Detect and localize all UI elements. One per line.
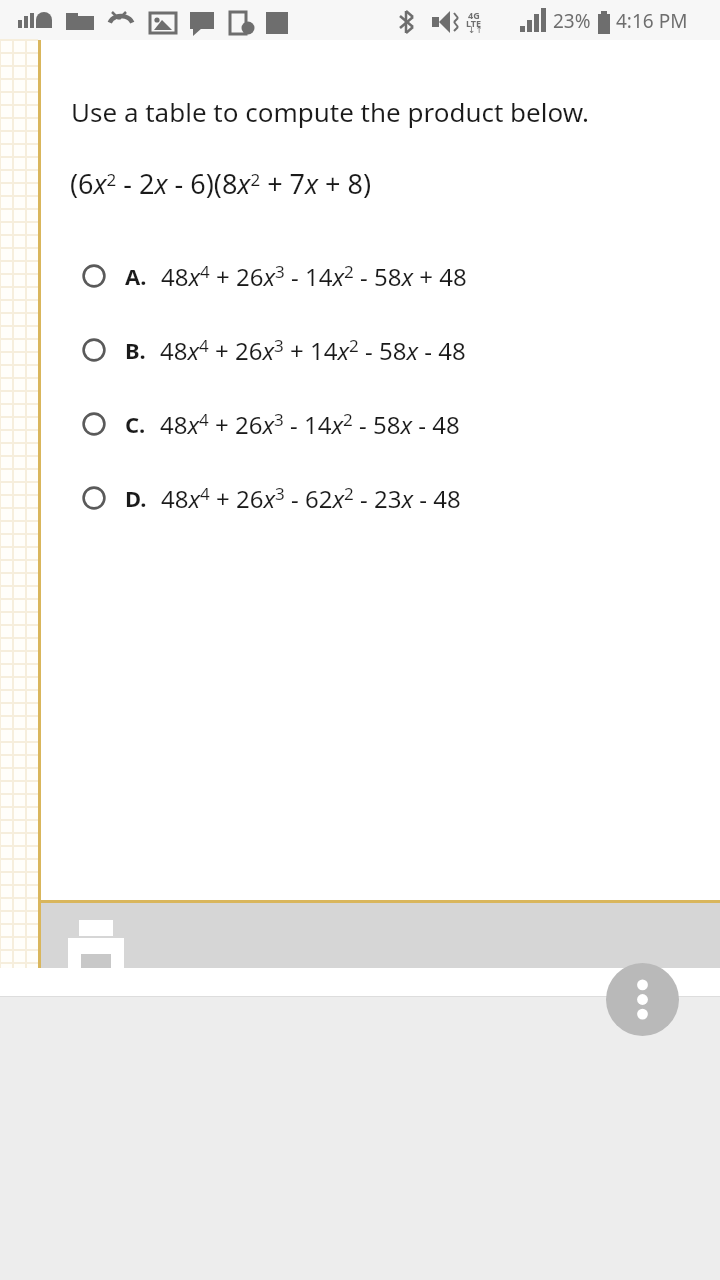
staticText: C. (125, 409, 146, 439)
staticText: 48x4 + 26x3 - 14x2 - 58x - 48 (160, 408, 460, 441)
button[interactable]: C. (41, 387, 720, 461)
staticText: ↓↑ (468, 25, 484, 35)
staticText: 48x4 + 26x3 - 62x2 - 23x - 48 (161, 482, 461, 515)
button[interactable]: Print (64, 912, 122, 970)
staticText: LTE (466, 17, 482, 29)
staticText: 4:16 PM (616, 8, 688, 34)
button[interactable]: More options (606, 963, 679, 1036)
staticText: (6x2 - 2x - 6)(8x2 + 7x + 8) (70, 165, 372, 202)
button[interactable]: A. (41, 239, 720, 313)
staticText: 4G (468, 9, 480, 21)
staticText: A. (125, 261, 147, 291)
staticText: 48x4 + 26x3 + 14x2 - 58x - 48 (160, 334, 466, 367)
button[interactable]: B. (41, 313, 720, 387)
staticText: B. (125, 335, 146, 365)
staticText: 48x4 + 26x3 - 14x2 - 58x + 48 (161, 260, 467, 293)
button[interactable]: D. (41, 461, 720, 535)
staticText: D. (125, 483, 147, 513)
staticText: Use a table to compute the product below… (71, 94, 590, 129)
staticText: 23% (553, 8, 591, 34)
